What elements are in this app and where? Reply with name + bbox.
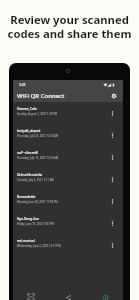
- staticText: OrtrunHenrietta: [17, 173, 42, 177]
- button[interactable]: More options: [107, 152, 117, 162]
- button[interactable]: More options: [107, 240, 117, 250]
- button[interactable]: Heaven_Cafe: [13, 102, 123, 124]
- button[interactable]: Settings: [108, 90, 120, 102]
- button[interactable]: More options: [107, 174, 117, 184]
- staticText: Gyo-Dong-Sun: [17, 217, 39, 221]
- button[interactable]: OrtrunHenrietta: [13, 168, 123, 190]
- staticText: WiFi QR Connect: [17, 92, 65, 100]
- button[interactable]: ouP~=Secret8: [13, 146, 123, 168]
- staticText: ouP~=Secret8: [17, 151, 38, 155]
- staticText: Thursday, July 22, 2021 12:14 AM: [17, 134, 59, 138]
- button[interactable]: More options: [107, 130, 117, 140]
- staticText: 3:23: [19, 83, 26, 87]
- staticText: Wednesday, June 2, 2021 12:17 PM: [17, 244, 61, 248]
- button[interactable]: Share: [60, 289, 76, 300]
- button[interactable]: Bernardette: [13, 190, 123, 212]
- staticText: Bernardette: [17, 195, 36, 199]
- staticText: Sunday, August 1, 2021 1:39 PM: [17, 112, 58, 116]
- button[interactable]: More options: [107, 196, 117, 206]
- button[interactable]: teriyaki_airport: [13, 124, 123, 146]
- button[interactable]: More options: [107, 218, 117, 228]
- button[interactable]: More options: [107, 108, 117, 118]
- staticText: Friday, June 18, 2021 7:40 PM: [17, 222, 54, 226]
- staticText: red-marisol: [17, 239, 35, 243]
- staticText: teriyaki_airport: [17, 129, 41, 133]
- staticText: Review your scanned codes and share them: [0, 12, 139, 41]
- staticText: Thursday, July 15, 2021 12:16 AM: [17, 156, 59, 160]
- button[interactable]: red-marisol: [13, 234, 123, 256]
- button[interactable]: History: [97, 289, 113, 300]
- staticText: Heaven_Cafe: [17, 107, 37, 111]
- button[interactable]: Gyo-Dong-Sun: [13, 212, 123, 234]
- staticText: Monday, June 28, 2021 11:58 PM: [17, 200, 58, 204]
- staticText: Tuesday, July 6, 2021 1:11 AM: [17, 178, 54, 182]
- button[interactable]: Scan: [23, 289, 39, 300]
